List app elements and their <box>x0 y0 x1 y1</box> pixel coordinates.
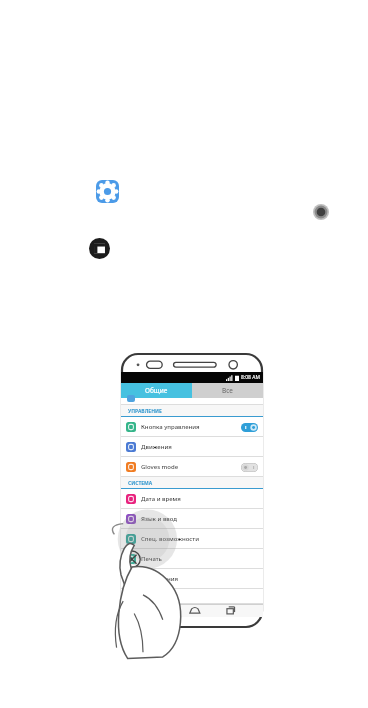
button[interactable]: Gloves mode <box>121 457 263 477</box>
staticText: Кнопка управления <box>141 423 200 431</box>
button[interactable]: Option <box>313 204 329 220</box>
staticText: Дата и время <box>141 495 181 503</box>
button[interactable]: Дата и время <box>121 489 263 509</box>
button[interactable]: Кнопка управления <box>121 417 263 437</box>
button[interactable]: О телефоне <box>121 589 263 604</box>
button[interactable]: Общие <box>121 383 192 398</box>
button[interactable]: Движения <box>121 437 263 457</box>
button[interactable]: On <box>241 423 258 432</box>
staticText: О телефоне <box>141 593 176 601</box>
button[interactable]: Обновления <box>121 569 263 589</box>
staticText: Все <box>222 386 233 395</box>
button[interactable]: Язык и ввод <box>121 509 263 529</box>
staticText: Обновления <box>141 575 179 583</box>
button[interactable]: Все <box>192 383 263 398</box>
button[interactable]: Settings app <box>96 180 119 203</box>
button[interactable]: Display settings <box>89 238 110 259</box>
staticText: Печать <box>141 555 162 563</box>
staticText: Движения <box>141 443 172 451</box>
staticText: Gloves mode <box>141 463 179 471</box>
staticText: Спец. возможности <box>141 535 200 543</box>
staticText: Общие <box>145 386 168 395</box>
button[interactable]: Печать <box>121 549 263 569</box>
staticText: 8:08 AM <box>241 374 260 381</box>
staticText: Язык и ввод <box>141 515 178 523</box>
button[interactable]: Спец. возможности <box>121 529 263 549</box>
staticText: СИСТЕМА <box>128 480 153 487</box>
button[interactable]: Off <box>241 463 258 472</box>
staticText: УПРАВЛЕНИЕ <box>128 408 162 415</box>
